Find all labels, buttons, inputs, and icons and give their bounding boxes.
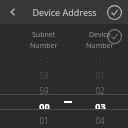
staticText: 03 <box>95 100 106 112</box>
staticText: 59 <box>39 85 49 96</box>
button[interactable]: Confirm <box>104 2 124 22</box>
button[interactable]: 57 <box>20 53 68 128</box>
button[interactable]: Apply <box>104 26 124 46</box>
staticText: 01 <box>39 115 49 126</box>
staticText: Number <box>30 41 58 51</box>
staticText: Device <box>89 30 111 40</box>
staticText: 04 <box>95 115 105 126</box>
staticText: Device Address <box>32 6 97 18</box>
staticText: 02 <box>95 85 105 96</box>
staticText: Subnet <box>32 30 56 40</box>
staticText: 00 <box>39 100 50 112</box>
staticText: 58 <box>39 70 49 81</box>
staticText: 01 <box>95 70 105 81</box>
staticText: Number <box>86 41 114 51</box>
button[interactable]: Back <box>4 3 22 21</box>
button[interactable]: 00 <box>76 53 124 128</box>
